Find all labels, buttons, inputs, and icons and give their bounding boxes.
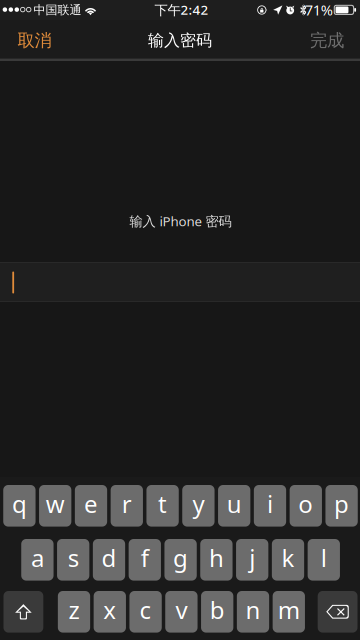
button[interactable]: q	[3, 485, 35, 527]
staticText: 取消	[17, 30, 51, 51]
staticText: q	[12, 488, 27, 520]
staticText: v	[175, 594, 187, 626]
button[interactable]: y	[182, 485, 214, 527]
staticText: n	[245, 594, 260, 626]
staticText: 输入 iPhone 密码	[129, 212, 231, 230]
staticText: k	[281, 542, 294, 574]
staticText: r	[122, 488, 132, 520]
staticText: 71%	[305, 0, 333, 19]
staticText: f	[141, 542, 149, 574]
staticText: z	[68, 594, 79, 626]
staticText: c	[140, 594, 152, 626]
button[interactable]	[0, 262, 360, 302]
button[interactable]: m	[273, 591, 305, 633]
staticText: e	[84, 488, 98, 520]
button[interactable]: h	[200, 539, 232, 581]
staticText: p	[334, 488, 349, 520]
button[interactable]: l	[308, 539, 340, 581]
button[interactable]: 取消	[0, 20, 69, 60]
button[interactable]: t	[146, 485, 179, 527]
staticText: h	[209, 542, 224, 574]
button[interactable]: p	[325, 485, 358, 527]
button[interactable]: a	[21, 539, 53, 581]
button[interactable]: s	[57, 539, 89, 581]
staticText: j	[249, 542, 255, 574]
staticText: o	[298, 488, 313, 520]
button[interactable]: u	[218, 485, 250, 527]
staticText: b	[210, 594, 225, 626]
staticText: m	[278, 594, 300, 626]
staticText: 输入密码	[148, 31, 212, 50]
button[interactable]: e	[75, 485, 107, 527]
button[interactable]: Delete	[318, 591, 357, 633]
button[interactable]: f	[129, 539, 161, 581]
button[interactable]: o	[290, 485, 322, 527]
staticText: 下午2:42	[154, 1, 208, 18]
button[interactable]: w	[39, 485, 71, 527]
button[interactable]: j	[236, 539, 268, 581]
button[interactable]: d	[93, 539, 125, 581]
button[interactable]: Shift	[3, 591, 43, 633]
staticText: a	[31, 542, 44, 574]
staticText: 中国联通	[33, 2, 81, 17]
staticText: l	[321, 542, 327, 574]
staticText: x	[103, 594, 116, 626]
button[interactable]: 完成	[294, 20, 360, 60]
button[interactable]: v	[165, 591, 197, 633]
button[interactable]: i	[254, 485, 286, 527]
button[interactable]: k	[272, 539, 304, 581]
button[interactable]: g	[164, 539, 197, 581]
staticText: t	[158, 488, 167, 520]
button[interactable]: z	[58, 591, 90, 633]
staticText: 完成	[310, 30, 344, 51]
button[interactable]: b	[201, 591, 233, 633]
button[interactable]: c	[129, 591, 162, 633]
button[interactable]: r	[111, 485, 143, 527]
staticText: u	[227, 488, 242, 520]
staticText: i	[267, 488, 273, 520]
staticText: d	[101, 542, 116, 574]
staticText: w	[46, 488, 65, 520]
button[interactable]: n	[237, 591, 269, 633]
staticText: g	[173, 542, 188, 574]
staticText: y	[192, 488, 204, 520]
staticText: s	[68, 542, 79, 574]
button[interactable]: x	[94, 591, 126, 633]
